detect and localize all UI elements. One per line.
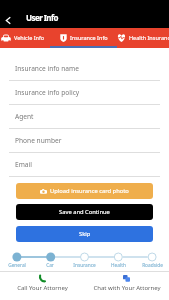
button[interactable]: Call Your Attorney (0, 272, 84, 300)
staticText: Skip (79, 230, 91, 238)
staticText: Vehicle Info (14, 34, 45, 41)
button[interactable]: Insurance info policy (0, 81, 169, 105)
button[interactable]: General (0, 262, 33, 269)
staticText: Email (15, 160, 32, 169)
staticText: Phone number (15, 136, 62, 145)
button[interactable]: Insurance info name (0, 57, 169, 81)
staticText: Agent (15, 112, 34, 121)
staticText: User Info (26, 12, 58, 23)
button[interactable]: Car (33, 262, 67, 269)
staticText: Roadside (142, 262, 163, 269)
staticText: Insurance (73, 262, 96, 269)
button[interactable]: Email (0, 153, 169, 177)
staticText: Insurance info name (15, 64, 79, 73)
button[interactable]: Health (101, 262, 135, 269)
button[interactable]: Skip (16, 226, 153, 242)
button[interactable]: Insurance Info (50, 28, 117, 47)
staticText: Chat with Your Attorney (93, 284, 161, 292)
staticText: General (8, 262, 26, 269)
button[interactable]: Back (2, 14, 14, 26)
staticText: Car (46, 262, 54, 269)
button[interactable]: Vehicle Info (0, 28, 46, 47)
staticText: Insurance info policy (15, 88, 80, 97)
staticText: Save and Continue (59, 208, 110, 216)
staticText: Health Insurance (129, 34, 169, 41)
staticText: Call Your Attorney (17, 284, 68, 292)
staticText: Health (111, 262, 126, 269)
button[interactable]: Roadside (135, 262, 169, 269)
button[interactable]: Phone number (0, 129, 169, 153)
staticText: Upload insurance card photo (50, 187, 129, 195)
button[interactable]: Upload insurance card photo (16, 183, 153, 199)
button[interactable]: Chat with Your Attorney (84, 272, 169, 300)
button[interactable]: Health Insurance (117, 28, 169, 47)
button[interactable]: Insurance (67, 262, 101, 269)
staticText: Insurance Info (70, 34, 108, 41)
button[interactable]: Save and Continue (16, 204, 153, 220)
button[interactable]: Agent (0, 105, 169, 129)
